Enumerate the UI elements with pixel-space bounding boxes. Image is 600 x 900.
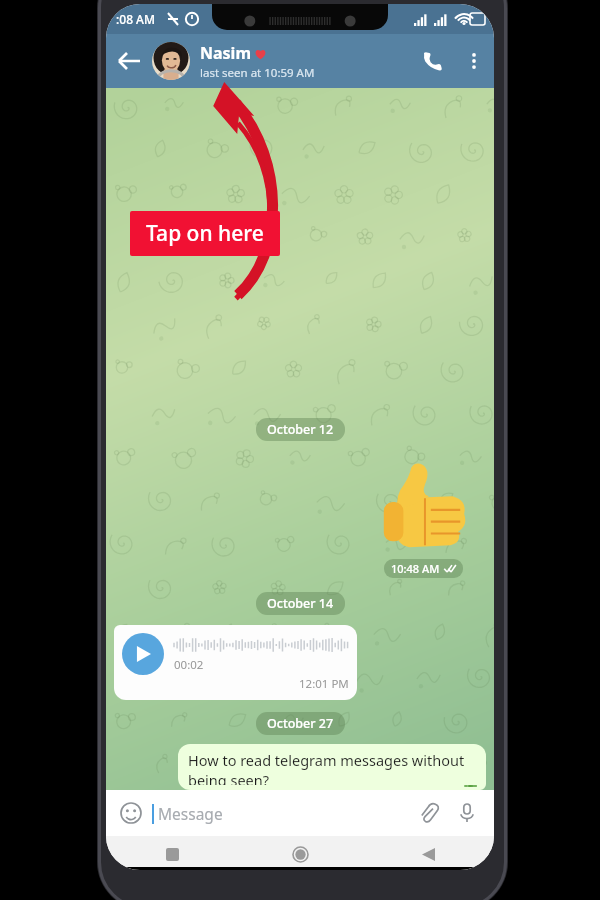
button[interactable]: Home <box>284 838 316 870</box>
button[interactable]: Attach <box>412 796 446 830</box>
button[interactable]: Back <box>106 38 152 84</box>
staticText: How to read telegram messages without be… <box>188 750 477 785</box>
button[interactable]: Record voice <box>450 796 484 830</box>
staticText: :08 AM <box>116 11 155 27</box>
staticText: Nasim <box>200 42 252 64</box>
staticText: October 27 <box>267 715 334 732</box>
staticText: Tap on here <box>146 219 264 248</box>
button[interactable]: More options <box>454 41 494 81</box>
button[interactable]: Call <box>410 39 454 83</box>
button[interactable]: Play voice message <box>114 625 357 700</box>
button[interactable]: Play voice message <box>122 633 164 675</box>
button[interactable]: Profile photo <box>152 42 190 80</box>
button[interactable]: October 27 <box>256 712 345 735</box>
staticText: October 14 <box>267 595 334 612</box>
staticText: 00:02 <box>174 657 204 673</box>
button[interactable]: October 12 <box>256 418 345 441</box>
staticText: 12:01 PM <box>299 676 349 692</box>
staticText: last seen at 10:59 AM <box>200 65 315 81</box>
staticText: Message <box>158 803 223 824</box>
button[interactable]: Tap on here <box>130 211 280 256</box>
button[interactable]: Nasim <box>200 42 410 81</box>
staticText: 10:48 AM <box>391 561 440 576</box>
button[interactable]: October 14 <box>256 592 345 615</box>
button[interactable]: Message <box>152 803 412 824</box>
staticText: October 12 <box>267 421 334 438</box>
button[interactable]: Back <box>412 838 444 870</box>
button[interactable]: Recents <box>156 838 188 870</box>
button[interactable]: How to read telegram messages without be… <box>178 744 486 790</box>
button[interactable]: Emoji <box>116 798 146 828</box>
